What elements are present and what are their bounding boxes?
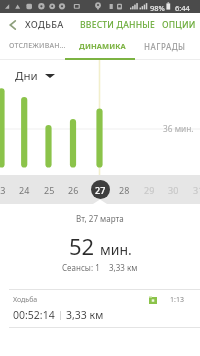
staticText: 36 мин. bbox=[163, 123, 194, 134]
staticText: 3,33 км bbox=[109, 262, 138, 273]
button[interactable]: Дни bbox=[15, 68, 55, 84]
staticText: 27 bbox=[95, 184, 106, 196]
staticText: 26 bbox=[68, 184, 79, 196]
button[interactable]: 26 bbox=[62, 178, 84, 201]
staticText: 24 bbox=[19, 184, 30, 196]
staticText: 25 bbox=[44, 184, 55, 196]
staticText: ДИНАМИКА bbox=[79, 41, 126, 51]
staticText: ОПЦИИ bbox=[162, 19, 196, 31]
staticText: 31 bbox=[193, 184, 200, 196]
staticText: 30 bbox=[168, 184, 179, 196]
staticText: Дни bbox=[15, 68, 38, 84]
staticText: 1:13 bbox=[170, 295, 184, 305]
button[interactable]: 27 bbox=[89, 178, 111, 201]
button[interactable]: ОТСЛЕЖИВАН… bbox=[0, 36, 75, 56]
staticText: 3,33 км bbox=[66, 308, 104, 322]
staticText: ХОДЬБА bbox=[25, 18, 64, 31]
staticText: 98% bbox=[150, 3, 165, 13]
staticText: 6:44 bbox=[175, 3, 190, 13]
staticText: 28 bbox=[119, 184, 130, 196]
button[interactable]: 24 bbox=[13, 178, 35, 201]
staticText: 52 bbox=[69, 231, 95, 261]
staticText: Вт, 27 марта bbox=[76, 213, 124, 224]
button[interactable]: ОПЦИИ bbox=[157, 19, 200, 31]
staticText: 29 bbox=[144, 184, 155, 196]
staticText: Сеансы: 1 bbox=[62, 262, 100, 273]
button[interactable]: ДИНАМИКА bbox=[75, 36, 130, 56]
staticText: 00:52:14 bbox=[13, 308, 55, 322]
staticText: мин. bbox=[100, 240, 132, 259]
staticText: 23 bbox=[0, 184, 6, 196]
button[interactable]: 31 bbox=[187, 178, 200, 201]
button[interactable]: 28 bbox=[113, 178, 135, 201]
button[interactable]: Back bbox=[0, 13, 25, 36]
staticText: ОТСЛЕЖИВАН… bbox=[9, 41, 66, 51]
button[interactable]: НАГРАДЫ bbox=[130, 36, 200, 56]
button[interactable]: Ходьба bbox=[0, 290, 200, 327]
button[interactable]: 29 bbox=[138, 178, 160, 201]
staticText: Ходьба bbox=[13, 295, 38, 305]
button[interactable]: 25 bbox=[38, 178, 60, 201]
staticText: ВВЕСТИ ДАННЫЕ bbox=[80, 19, 155, 31]
button[interactable]: ХОДЬБА bbox=[25, 18, 70, 31]
button[interactable]: 30 bbox=[162, 178, 184, 201]
button[interactable]: 23 bbox=[0, 178, 11, 201]
staticText: НАГРАДЫ bbox=[144, 41, 186, 52]
button[interactable]: ВВЕСТИ ДАННЫЕ bbox=[77, 19, 157, 31]
